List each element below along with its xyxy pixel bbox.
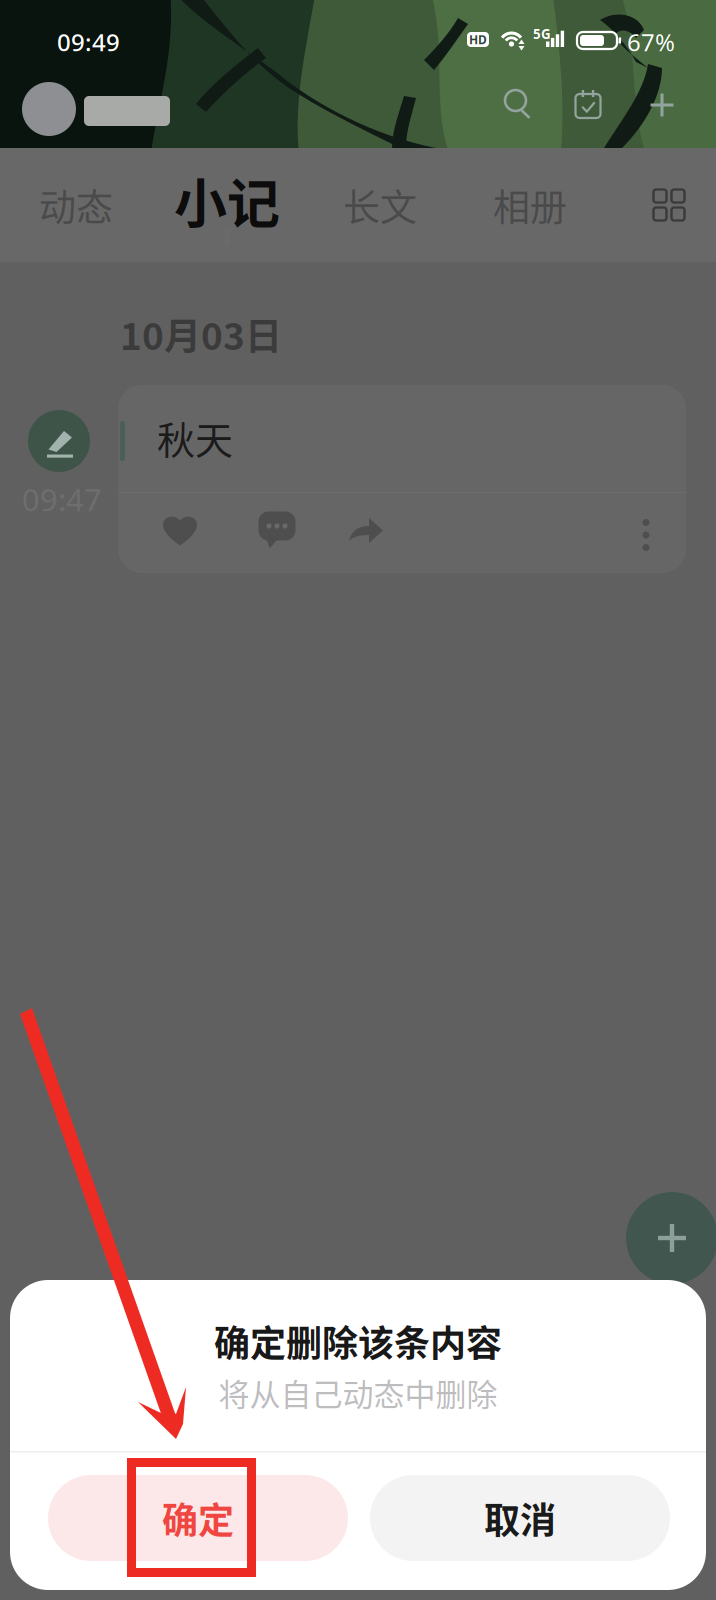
button[interactable]: Add [636, 79, 688, 131]
staticText: 将从自己动态中删除 [218, 1370, 497, 1415]
button[interactable]: Daily check-in [563, 79, 615, 131]
staticText: 10月03日 [120, 307, 282, 361]
button[interactable]: 相册 [474, 148, 586, 262]
staticText: 小记 [174, 162, 280, 239]
button[interactable]: Search [493, 79, 545, 131]
staticText: 09:49 [57, 26, 120, 58]
staticText: 秋天 [157, 410, 233, 465]
button[interactable]: More options [624, 505, 668, 565]
button[interactable]: 小记 [167, 148, 287, 262]
button[interactable]: New note [626, 1192, 716, 1284]
staticText: HD [469, 31, 487, 47]
staticText: 长文 [343, 178, 417, 232]
button[interactable]: 确定 [48, 1475, 348, 1561]
button[interactable]: 取消 [370, 1475, 670, 1561]
staticText: 相册 [493, 178, 567, 232]
staticText: 取消 [484, 1492, 556, 1544]
button[interactable]: 动态 [20, 148, 132, 262]
button[interactable]: Grid layout [634, 148, 704, 262]
button[interactable]: Like [150, 500, 210, 560]
staticText: 确定删除该条内容 [214, 1315, 502, 1367]
button[interactable]: Comment [247, 500, 307, 560]
staticText: 09:47 [22, 479, 102, 520]
staticText: 67% [627, 26, 675, 58]
staticText: 动态 [39, 178, 113, 232]
button[interactable]: 长文 [324, 148, 436, 262]
staticText: 确定 [162, 1492, 234, 1544]
button[interactable]: Share [336, 500, 396, 560]
staticText: 5G [533, 25, 551, 43]
